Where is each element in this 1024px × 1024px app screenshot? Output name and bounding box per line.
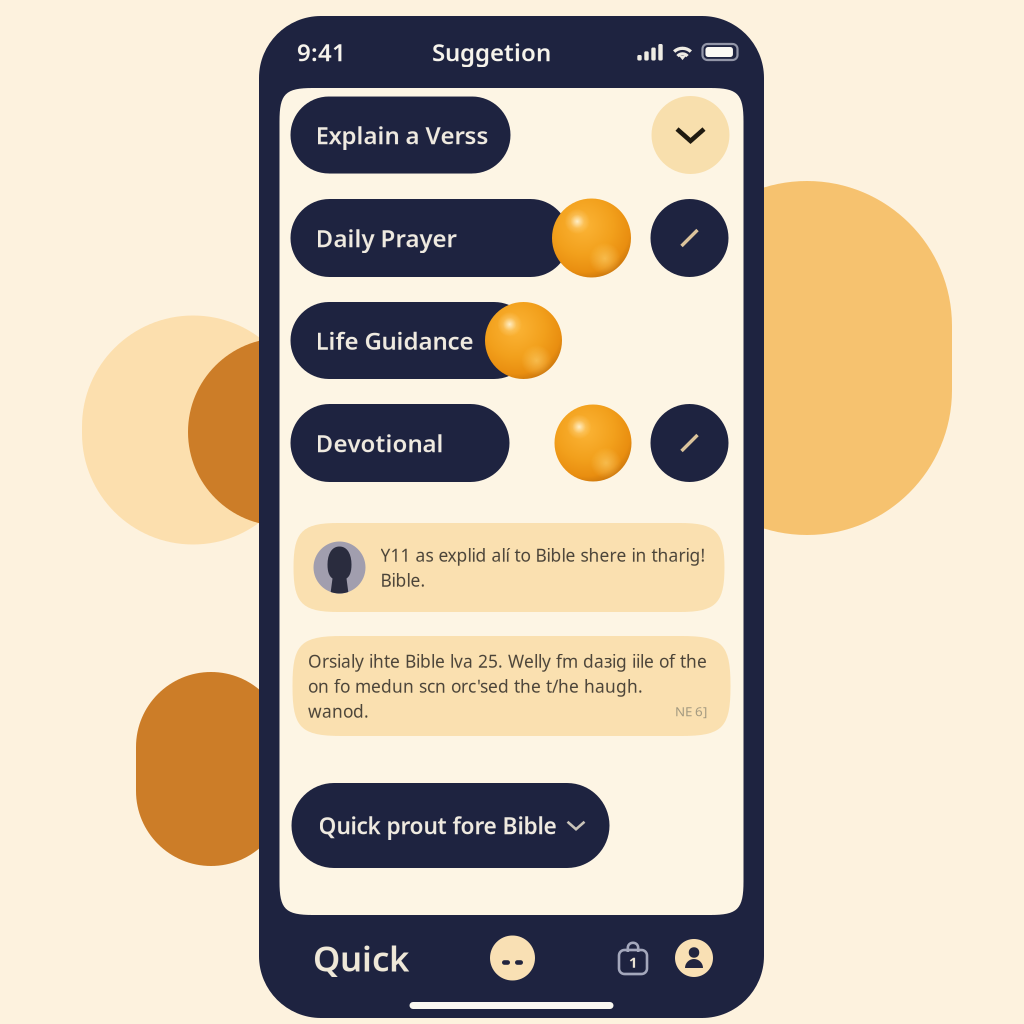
button[interactable]: Quick bbox=[306, 928, 416, 988]
staticText: 9:41 bbox=[297, 36, 346, 68]
button[interactable]: Library bbox=[618, 942, 648, 974]
staticText: NE 6] bbox=[675, 702, 707, 720]
button[interactable]: Edit bbox=[650, 199, 728, 277]
staticText: Devotional bbox=[315, 427, 443, 459]
staticText: on fo medun scn orc'sed the t/he haugh. bbox=[308, 674, 643, 697]
staticText: Y11 as explid alí to Bible shere in thar… bbox=[380, 543, 705, 566]
staticText: Quick prout fore Bible bbox=[318, 810, 556, 840]
staticText: 1 bbox=[629, 952, 637, 972]
staticText: wanod. bbox=[308, 699, 369, 722]
button[interactable]: Expand bbox=[651, 96, 729, 174]
staticText: Quick bbox=[313, 935, 409, 981]
button[interactable]: Quick prout fore Bible bbox=[291, 783, 609, 868]
staticText: Daily Prayer bbox=[315, 222, 456, 254]
button[interactable]: Devotional bbox=[290, 404, 509, 482]
staticText: Explain a Verss bbox=[315, 119, 488, 151]
button[interactable]: Chat bbox=[490, 935, 535, 980]
staticText: Bible. bbox=[380, 568, 425, 591]
button[interactable]: Daily Prayer bbox=[290, 199, 569, 277]
button[interactable]: Life Guidance bbox=[290, 302, 532, 379]
staticText: Orsialy ihte Bible lva 25. Welly fm daзi… bbox=[308, 649, 707, 672]
staticText: Life Guidance bbox=[315, 325, 473, 356]
button[interactable]: Edit bbox=[650, 404, 728, 482]
staticText: Suggetion bbox=[432, 36, 551, 68]
button[interactable]: Profile bbox=[675, 939, 713, 977]
button[interactable]: Explain a Verss bbox=[290, 96, 510, 173]
